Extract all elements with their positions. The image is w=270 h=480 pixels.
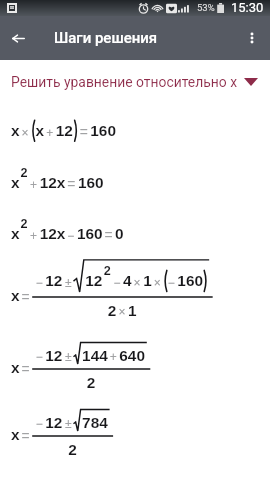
- staticText: 53%: [197, 2, 215, 13]
- staticText: 15:30: [231, 0, 264, 15]
- staticText: Решить уравнение относительно x: [11, 74, 238, 90]
- staticText: Шаги решения: [54, 29, 158, 47]
- button[interactable]: Ещё: [236, 22, 268, 54]
- button[interactable]: Решить уравнение относительно x: [0, 60, 270, 103]
- button[interactable]: Назад: [2, 22, 34, 54]
